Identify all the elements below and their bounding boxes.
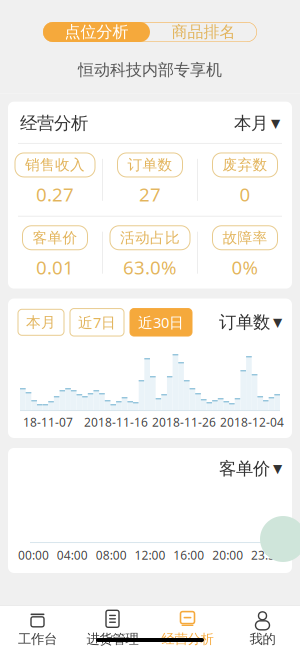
staticText: 12:00 — [134, 547, 165, 563]
staticText: 点位分析 — [64, 22, 128, 42]
staticText: 客单价 — [32, 229, 77, 247]
staticText: 故障率 — [222, 229, 267, 247]
staticText: 04:00 — [57, 547, 88, 563]
staticText: 废弃数 — [222, 156, 267, 174]
staticText: 2018-11-26 — [152, 414, 216, 430]
staticText: 27 — [139, 182, 161, 207]
button[interactable]: 点位分析 — [43, 22, 150, 42]
staticText: 近30日 — [138, 313, 184, 332]
staticText: 63.0% — [123, 255, 177, 280]
button[interactable]: 近30日 — [130, 309, 192, 336]
staticText: 工作台 — [18, 631, 57, 647]
button[interactable]: 工作台 — [0, 604, 75, 650]
staticText: 23:59 — [251, 547, 282, 563]
staticText: 0.01 — [36, 255, 74, 280]
staticText: 商品排名 — [171, 22, 235, 42]
staticText: 恒动科技内部专享机 — [78, 60, 222, 80]
button[interactable]: 本月 — [234, 113, 280, 134]
button[interactable]: 进货管理 — [75, 604, 150, 650]
staticText: 本月 — [234, 113, 268, 134]
staticText: 销售收入 — [25, 156, 85, 174]
staticText: 08:00 — [96, 547, 127, 563]
staticText: 18-11-07 — [23, 414, 73, 430]
staticText: 0 — [239, 182, 250, 207]
staticText: 20:00 — [212, 547, 243, 563]
button[interactable]: 本月 — [18, 309, 64, 335]
button[interactable]: 近7日 — [70, 309, 124, 336]
staticText: 经营分析 — [161, 631, 213, 647]
staticText: ▼ — [271, 116, 280, 130]
button[interactable]: 我的 — [225, 604, 300, 650]
staticText: 活动占比 — [120, 229, 180, 247]
staticText: 经营分析 — [20, 113, 88, 134]
staticText: 进货管理 — [86, 631, 138, 647]
staticText: ▼ — [273, 315, 282, 329]
button[interactable]: 订单数 — [219, 312, 282, 333]
staticText: 2018-12-04 — [220, 414, 284, 430]
staticText: ▼ — [273, 462, 282, 475]
staticText: 我的 — [249, 631, 275, 647]
staticText: 2018-11-16 — [84, 414, 148, 430]
button[interactable]: 客单价 — [219, 458, 282, 479]
staticText: 客单价 — [219, 458, 270, 479]
staticText: 00:00 — [18, 547, 49, 563]
staticText: 订单数 — [127, 156, 172, 174]
button[interactable]: 商品排名 — [150, 22, 257, 42]
staticText: 订单数 — [219, 312, 270, 333]
staticText: 0.27 — [36, 182, 74, 207]
staticText: 近7日 — [78, 313, 116, 332]
button[interactable]: 经营分析 — [150, 604, 225, 650]
staticText: 16:00 — [173, 547, 204, 563]
staticText: 本月 — [26, 313, 56, 331]
staticText: 0% — [231, 255, 258, 280]
